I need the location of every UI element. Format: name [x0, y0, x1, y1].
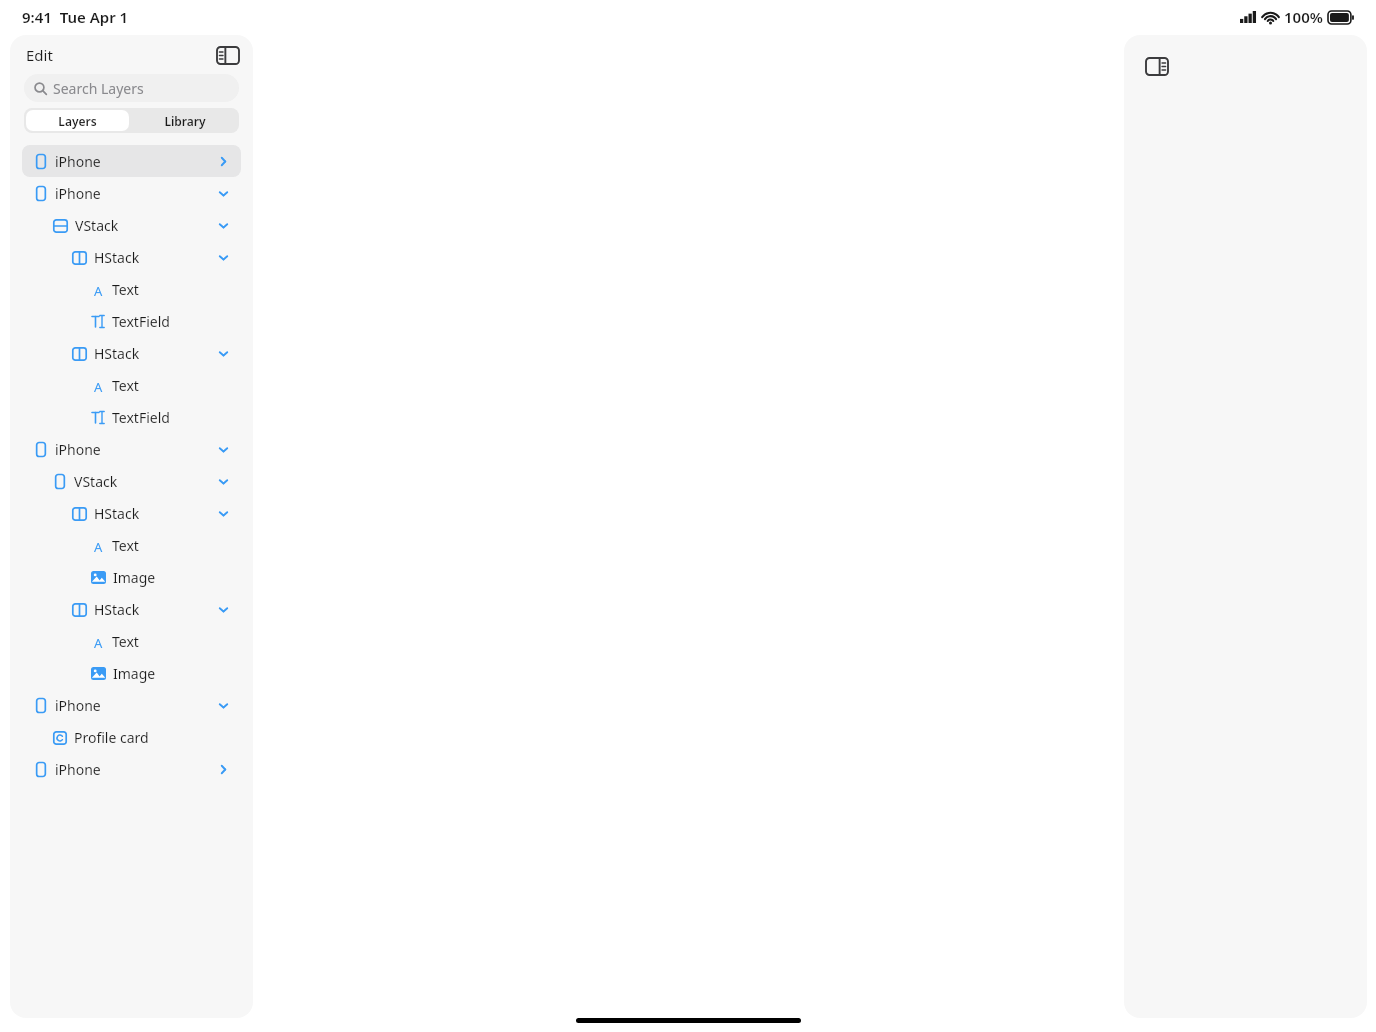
staticText: A	[94, 538, 103, 553]
button[interactable]: HStack	[22, 593, 241, 625]
staticText: Profile card	[74, 728, 149, 747]
staticText: iPhone	[55, 760, 101, 779]
button[interactable]: A	[22, 625, 241, 657]
staticText: iPhone	[55, 696, 101, 715]
button[interactable]: VStack	[22, 465, 241, 497]
staticText: iPhone	[55, 440, 101, 459]
button[interactable]: HStack	[22, 337, 241, 369]
button[interactable]: iPhone	[22, 689, 241, 721]
button[interactable]: HStack	[22, 497, 241, 529]
button[interactable]: Hide inspector	[1142, 51, 1172, 81]
button[interactable]: TextField	[22, 305, 241, 337]
staticText: Text	[112, 280, 139, 299]
staticText: 9:41 Tue Apr 1	[22, 7, 129, 27]
staticText: Layers	[58, 113, 97, 129]
staticText: Library	[164, 113, 206, 129]
button[interactable]: Layers	[26, 110, 129, 131]
staticText: iPhone	[55, 152, 101, 171]
button[interactable]: VStack	[22, 209, 241, 241]
staticText: TextField	[112, 408, 170, 427]
staticText: VStack	[75, 216, 119, 235]
staticText: Image	[113, 568, 156, 587]
button[interactable]: Image	[22, 657, 241, 689]
button[interactable]: Hide sidebar	[213, 40, 243, 70]
button[interactable]: HStack	[22, 241, 241, 273]
button[interactable]: Search Layers	[24, 74, 239, 102]
staticText: HStack	[94, 344, 140, 363]
button[interactable]: Edit	[26, 45, 53, 65]
staticText: 100%	[1284, 7, 1323, 27]
staticText: HStack	[94, 248, 140, 267]
button[interactable]: A	[22, 529, 241, 561]
staticText: Text	[112, 536, 139, 555]
staticText: Text	[112, 632, 139, 651]
staticText: iPhone	[55, 184, 101, 203]
staticText: Search Layers	[53, 79, 144, 98]
button[interactable]: A	[22, 369, 241, 401]
staticText: Image	[113, 664, 156, 683]
staticText: A	[94, 282, 103, 297]
button[interactable]: TextField	[22, 401, 241, 433]
button[interactable]: iPhone	[22, 177, 241, 209]
staticText: HStack	[94, 504, 140, 523]
button[interactable]: iPhone	[22, 145, 241, 177]
staticText: HStack	[94, 600, 140, 619]
staticText: Text	[112, 376, 139, 395]
button[interactable]: iPhone	[22, 433, 241, 465]
staticText: TextField	[112, 312, 170, 331]
staticText: A	[94, 378, 103, 393]
button[interactable]: Image	[22, 561, 241, 593]
staticText: VStack	[74, 472, 118, 491]
button[interactable]: Library	[131, 108, 239, 133]
staticText: A	[94, 634, 103, 649]
button[interactable]: Profile card	[22, 721, 241, 753]
button[interactable]: iPhone	[22, 753, 241, 785]
button[interactable]: A	[22, 273, 241, 305]
